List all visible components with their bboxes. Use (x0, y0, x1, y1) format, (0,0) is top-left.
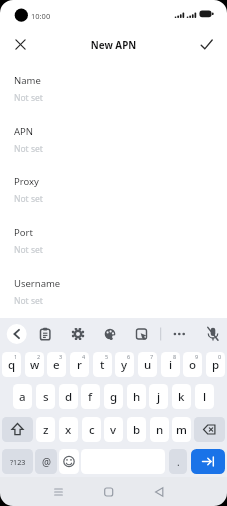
staticText: b (133, 422, 141, 438)
button[interactable]: c (82, 417, 101, 442)
staticText: New APN (0, 39, 227, 52)
staticText: v (110, 422, 117, 438)
button[interactable] (100, 324, 120, 344)
staticText: 5 (105, 353, 109, 360)
button[interactable]: r (70, 352, 89, 377)
staticText: . (177, 455, 180, 469)
staticText: Not set (14, 244, 43, 256)
button[interactable]: k (172, 384, 191, 409)
staticText: h (133, 389, 141, 405)
button[interactable]: d (59, 384, 78, 409)
button[interactable] (203, 324, 223, 344)
staticText: Name (14, 74, 41, 87)
staticText: x (65, 422, 72, 438)
button[interactable]: t (93, 352, 112, 377)
staticText: 0 (218, 353, 222, 360)
button[interactable]: . (169, 449, 187, 474)
staticText: Port (14, 226, 33, 239)
staticText: APN (14, 125, 34, 138)
staticText: Proxy (14, 175, 39, 188)
button[interactable] (2, 417, 33, 442)
button[interactable]: v (104, 417, 123, 442)
button[interactable]: s (36, 384, 55, 409)
button[interactable]: Proxy (0, 169, 227, 213)
staticText: t (100, 357, 105, 373)
button[interactable]: x (59, 417, 78, 442)
button[interactable]: y (115, 352, 134, 377)
button[interactable] (10, 34, 31, 55)
staticText: ?123 (10, 457, 26, 467)
staticText: r (77, 357, 82, 373)
staticText: a (19, 389, 26, 405)
button[interactable] (169, 324, 189, 344)
button[interactable]: q (2, 352, 21, 377)
button[interactable]: p (206, 352, 225, 377)
button[interactable]: n (150, 417, 169, 442)
button[interactable] (6, 323, 27, 344)
button[interactable] (59, 449, 79, 474)
button[interactable] (48, 481, 69, 502)
button[interactable]: f (81, 384, 100, 409)
button[interactable]: APN (0, 119, 227, 163)
button[interactable] (191, 449, 225, 474)
button[interactable]: e (47, 352, 66, 377)
staticText: 6 (127, 353, 131, 360)
button[interactable] (98, 481, 119, 502)
staticText: 3 (59, 353, 63, 360)
staticText: c (89, 422, 95, 438)
button[interactable]: m (172, 417, 191, 442)
staticText: Not set (14, 92, 43, 104)
button[interactable]: b (127, 417, 146, 442)
staticText: y (121, 357, 128, 373)
staticText: s (43, 389, 49, 405)
staticText: q (8, 357, 16, 373)
button[interactable]: i (161, 352, 180, 377)
staticText: 7 (150, 353, 154, 360)
staticText: 10:00 (31, 11, 51, 21)
staticText: z (43, 422, 49, 438)
button[interactable]: Port (0, 220, 227, 264)
button[interactable] (132, 324, 152, 344)
staticText: d (65, 389, 73, 405)
button[interactable]: g (104, 384, 123, 409)
staticText: j (157, 389, 161, 405)
button[interactable] (68, 324, 88, 344)
staticText: 2 (37, 353, 41, 360)
button[interactable]: j (149, 384, 168, 409)
staticText: Not set (14, 143, 43, 155)
staticText: i (169, 357, 173, 373)
button[interactable]: h (127, 384, 146, 409)
button[interactable] (149, 481, 170, 502)
button[interactable]: l (195, 384, 214, 409)
staticText: Username (14, 277, 61, 290)
staticText: n (156, 422, 164, 438)
staticText: 1 (14, 353, 18, 360)
staticText: o (189, 357, 197, 373)
staticText: 4 (82, 353, 86, 360)
staticText: @ (42, 455, 51, 469)
staticText: p (212, 357, 220, 373)
staticText: u (144, 357, 152, 373)
staticText: l (203, 389, 207, 405)
button[interactable]: @ (35, 449, 57, 474)
staticText: k (178, 389, 185, 405)
staticText: 8 (173, 353, 177, 360)
staticText: Not set (14, 193, 43, 205)
button[interactable]: Name (0, 68, 227, 112)
button[interactable]: ?123 (2, 449, 33, 474)
staticText: 9 (195, 353, 199, 360)
staticText: Not set (14, 295, 43, 307)
staticText: m (176, 422, 187, 438)
button[interactable] (196, 34, 217, 55)
button[interactable] (35, 324, 55, 344)
button[interactable]: o (183, 352, 202, 377)
button[interactable]: w (25, 352, 44, 377)
staticText: e (53, 357, 60, 373)
button[interactable]: u (138, 352, 157, 377)
button[interactable]: Username (0, 271, 227, 315)
button[interactable] (194, 417, 225, 442)
button[interactable]: z (36, 417, 55, 442)
button[interactable]: a (13, 384, 32, 409)
staticText: w (30, 357, 40, 373)
